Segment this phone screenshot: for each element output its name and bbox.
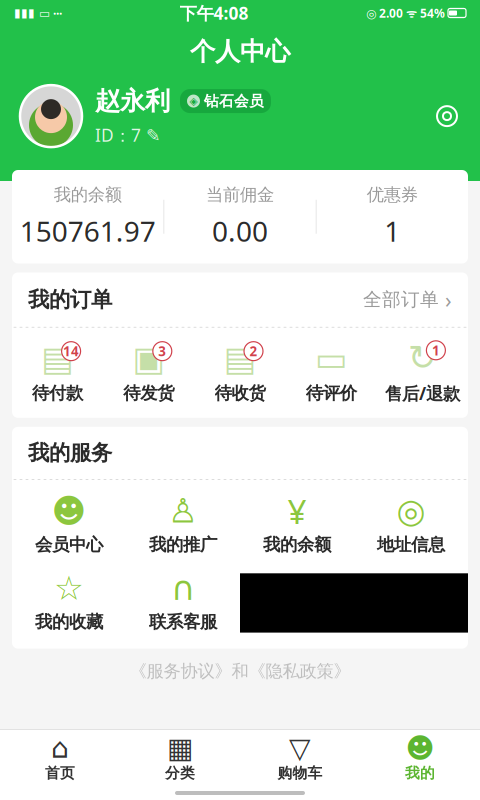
button[interactable]: 我的余额 xyxy=(12,170,163,263)
staticText: 我的推广 xyxy=(149,534,217,555)
button[interactable]: ▭ xyxy=(286,342,377,404)
staticText: 待评价 xyxy=(306,383,357,404)
button[interactable]: ☆ xyxy=(12,573,126,633)
button[interactable]: ID：7 xyxy=(95,124,161,147)
staticText: 个人中心 xyxy=(190,36,290,67)
staticText: ∩ xyxy=(171,569,195,607)
staticText: 待发货 xyxy=(123,383,174,404)
staticText: ▭ xyxy=(315,339,348,378)
staticText: 联系客服 xyxy=(149,611,217,633)
staticText: ▽ xyxy=(289,732,311,764)
button[interactable]: ▣ xyxy=(103,342,194,404)
staticText: ☻ xyxy=(51,492,86,530)
staticText: 2 xyxy=(249,342,257,360)
staticText: 1 xyxy=(384,212,400,249)
button[interactable]: ▽ xyxy=(240,730,360,786)
staticText: 3 xyxy=(158,342,166,360)
button[interactable]: ¥ xyxy=(240,496,354,555)
staticText: 购物车 xyxy=(277,764,322,782)
button[interactable]: ♙ xyxy=(126,496,240,555)
staticText: 14 xyxy=(63,342,79,360)
staticText: 150761.97 xyxy=(20,212,156,249)
button[interactable]: Profile photo xyxy=(20,85,82,147)
staticText: › xyxy=(445,285,452,314)
button[interactable]: ▤ xyxy=(194,342,286,404)
staticText: 当前佣金 xyxy=(206,184,274,205)
staticText: 我的 xyxy=(405,764,435,782)
staticText: ◎ 2.00 ᯤ 54% xyxy=(366,5,445,21)
staticText: 钻石会员 xyxy=(204,92,264,110)
staticText: 《服务协议》和《隐私政策》 xyxy=(129,661,350,682)
staticText: 我的余额 xyxy=(263,534,331,555)
staticText: 售后/退款 xyxy=(385,382,460,405)
staticText: 我的收藏 xyxy=(35,611,103,633)
staticText: 优惠券 xyxy=(367,184,418,205)
button[interactable]: ▤ xyxy=(12,342,103,404)
staticText: 分类 xyxy=(165,764,195,782)
staticText: 1 xyxy=(432,341,440,359)
button[interactable]: ☻ xyxy=(360,730,480,786)
staticText: 我的服务 xyxy=(28,440,112,466)
staticText: ↻ xyxy=(408,338,437,377)
staticText: 下午4:08 xyxy=(179,1,248,24)
staticText: ▤ xyxy=(41,339,74,378)
staticText: ▤ xyxy=(223,339,256,378)
staticText: ◈ xyxy=(189,95,197,107)
button[interactable]: ⌂ xyxy=(0,730,120,786)
staticText: ▮▮▮ xyxy=(14,6,35,20)
staticText: 全部订单 xyxy=(363,288,439,311)
button[interactable]: Settings xyxy=(434,103,460,129)
staticText: 会员中心 xyxy=(35,534,103,555)
staticText: 我的订单 xyxy=(28,286,112,313)
staticText: ▣ xyxy=(132,339,165,378)
staticText: 待收货 xyxy=(214,383,265,404)
staticText: ID：7 xyxy=(95,124,141,147)
button[interactable]: 优惠券 xyxy=(317,170,468,263)
button[interactable]: ↻ xyxy=(377,341,468,405)
button[interactable]: ◎ xyxy=(354,496,468,555)
button[interactable]: ▦ xyxy=(120,730,240,786)
staticText: ▦ xyxy=(167,732,193,764)
staticText: ☆ xyxy=(54,569,84,607)
button[interactable]: ∩ xyxy=(126,573,240,633)
staticText: 待付款 xyxy=(32,383,83,404)
staticText: 首页 xyxy=(45,764,75,782)
staticText: ✎ xyxy=(146,125,161,145)
staticText: 赵永利 xyxy=(95,85,170,117)
staticText: ☻ xyxy=(405,732,434,764)
staticText: ◎ xyxy=(396,492,425,530)
staticText: 我的余额 xyxy=(54,184,122,205)
button[interactable]: ☻ xyxy=(12,496,126,555)
staticText: ♙ xyxy=(168,492,198,530)
button[interactable]: 全部订单 xyxy=(363,285,452,314)
staticText: 地址信息 xyxy=(377,534,445,555)
button[interactable]: 《服务协议》和《隐私政策》 xyxy=(129,649,350,694)
staticText: ⌂ xyxy=(51,732,69,764)
staticText: 0.00 xyxy=(212,212,268,249)
staticText: ¥ xyxy=(287,489,306,533)
button[interactable]: 当前佣金 xyxy=(164,170,316,263)
staticText: ▭ ··· xyxy=(35,5,62,21)
